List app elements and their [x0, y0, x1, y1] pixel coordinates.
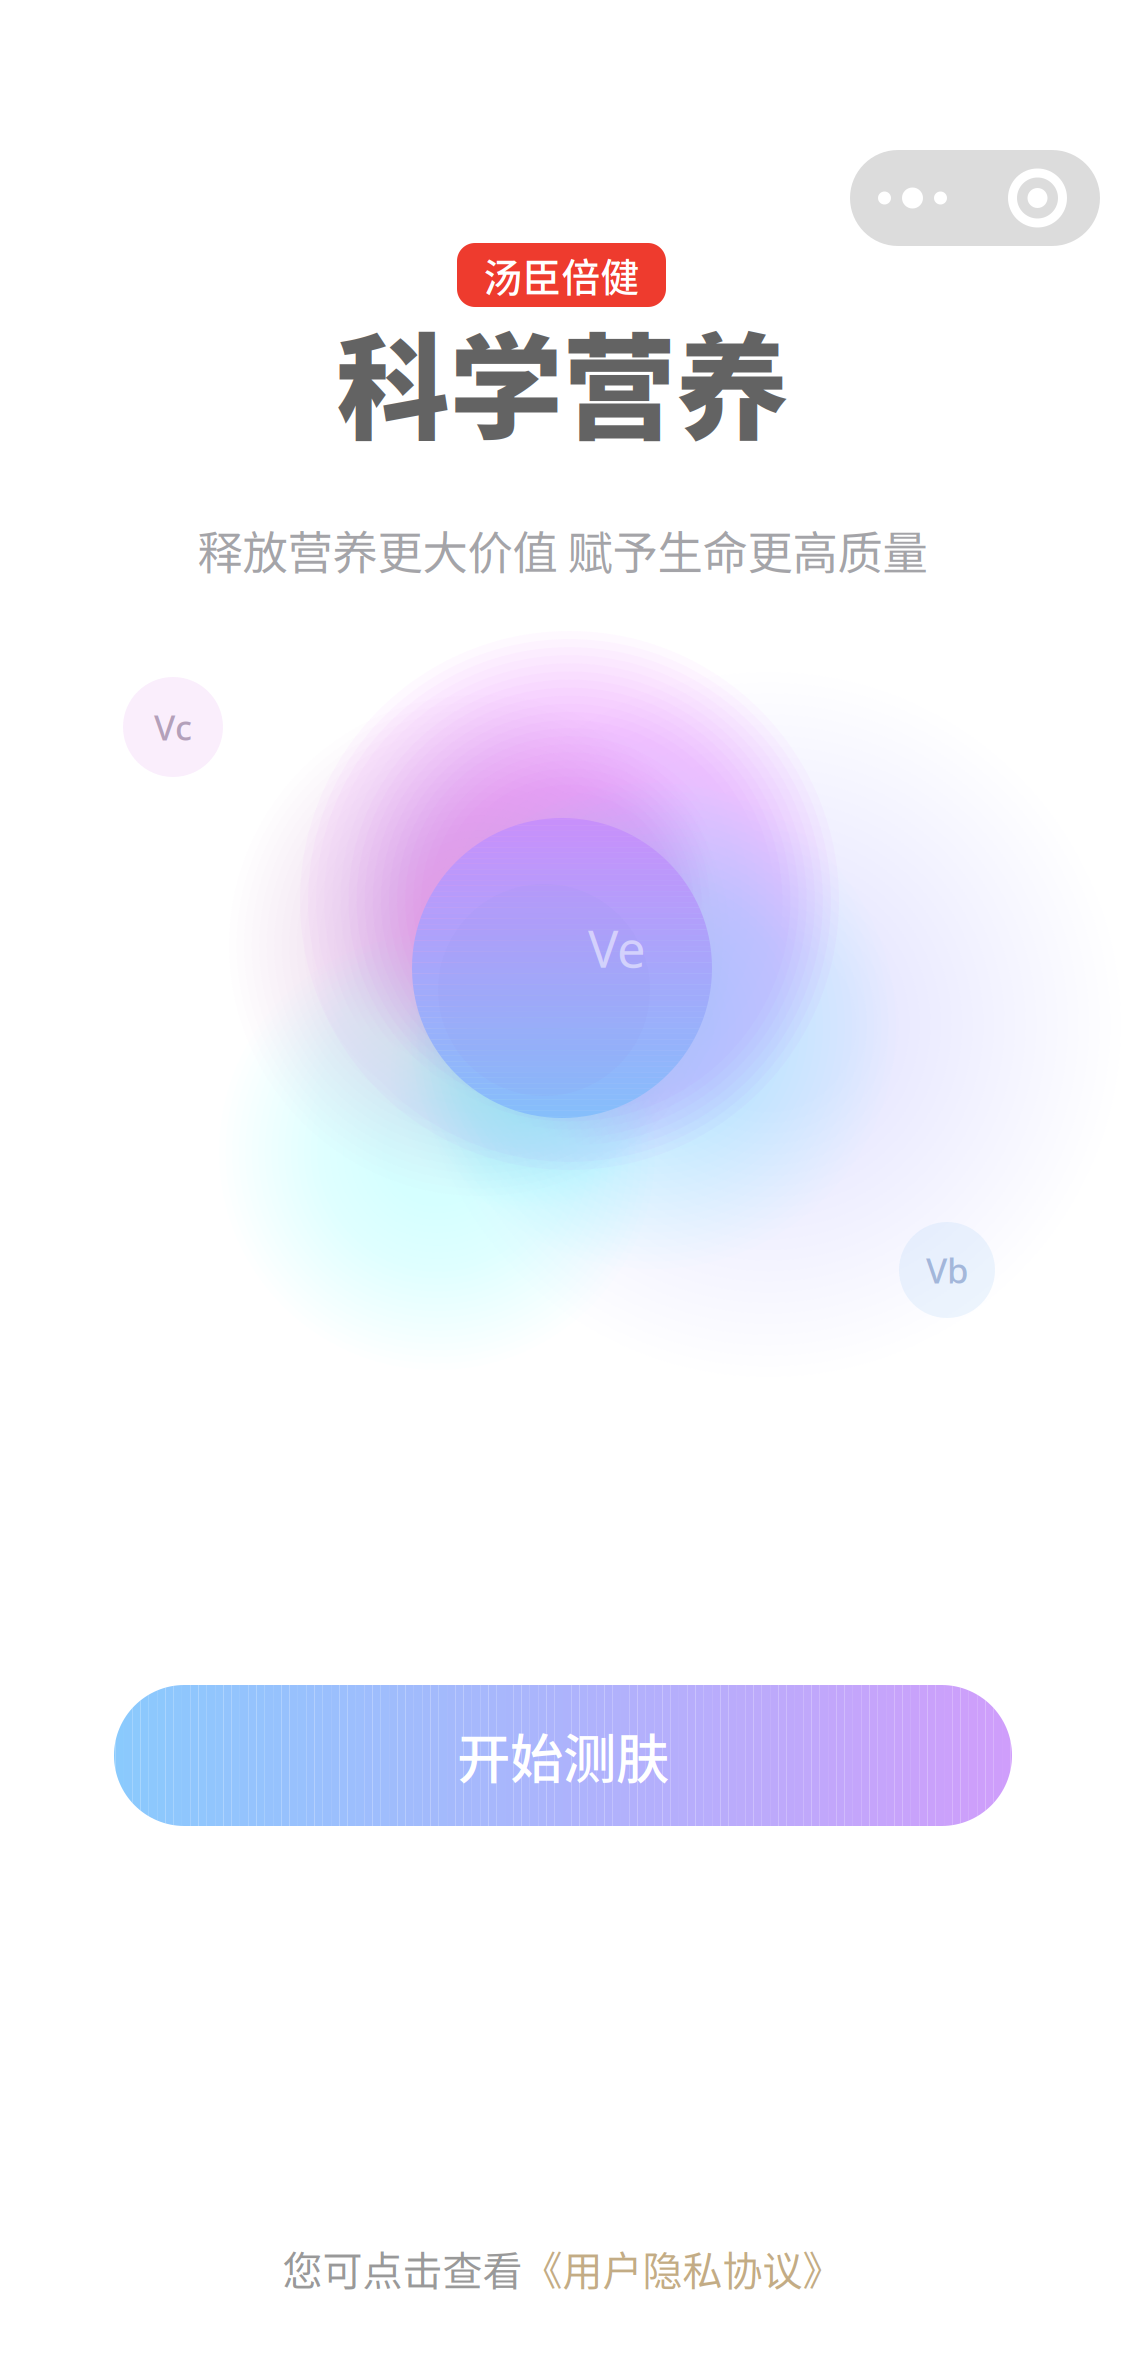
staticText: 您可点击查看 [282, 2239, 522, 2297]
staticText: 科学营养 [336, 298, 788, 462]
button[interactable]: 您可点击查看 [0, 2240, 1125, 2296]
staticText: Vc [154, 704, 192, 750]
staticText: Ve [588, 914, 646, 982]
staticText: 开始测肤 [457, 1717, 669, 1794]
staticText: 释放营养更大价值 赋予生命更高质量 [197, 517, 927, 583]
staticText: 《用户隐私协议》 [522, 2239, 842, 2297]
staticText: 汤臣倍健 [483, 247, 639, 303]
staticText: Vb [926, 1247, 968, 1293]
button[interactable]: 开始测肤 [114, 1685, 1012, 1826]
